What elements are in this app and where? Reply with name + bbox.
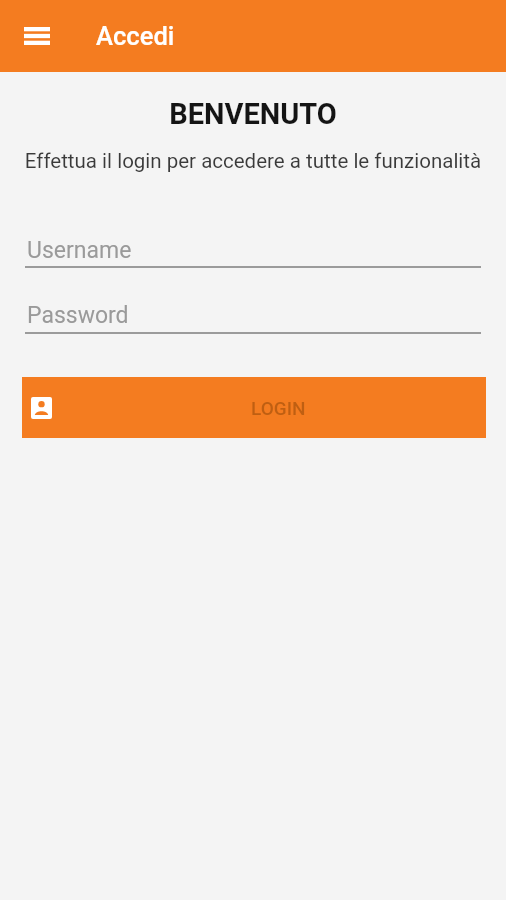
staticText: LOGIN <box>251 397 306 419</box>
button[interactable]: Username <box>25 229 481 268</box>
button[interactable]: Password <box>25 294 481 334</box>
staticText: BENVENUTO <box>0 97 506 131</box>
staticText: Username <box>27 237 132 264</box>
button[interactable]: LOGIN <box>22 377 486 438</box>
button[interactable]: Open navigation menu <box>13 12 61 60</box>
staticText: Accedi <box>96 21 175 51</box>
staticText: Effettua il login per accedere a tutte l… <box>0 149 506 173</box>
staticText: Password <box>27 302 129 329</box>
